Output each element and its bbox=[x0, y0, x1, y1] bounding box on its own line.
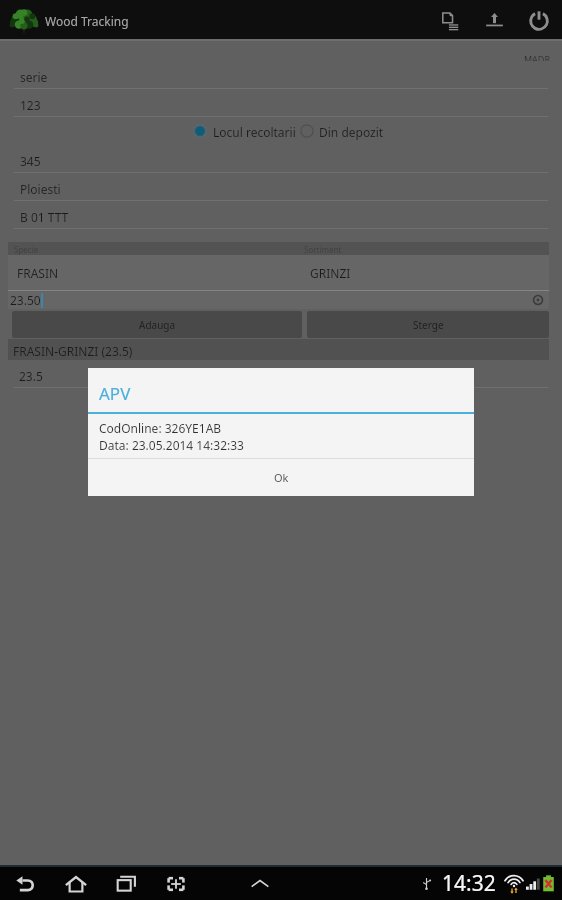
button[interactable]: Ok bbox=[88, 459, 474, 496]
staticText: Sortiment bbox=[304, 244, 342, 255]
button[interactable]: Sterge bbox=[307, 311, 549, 338]
staticText: serie bbox=[20, 69, 48, 85]
button[interactable]: Locul recoltarii bbox=[193, 122, 296, 140]
button[interactable]: Back bbox=[12, 867, 40, 900]
staticText: Din depozit bbox=[319, 124, 384, 140]
staticText: Adauga bbox=[139, 318, 176, 332]
button[interactable]: Adauga bbox=[12, 311, 302, 338]
staticText: APV bbox=[99, 382, 131, 405]
staticText: Locul recoltarii bbox=[213, 124, 296, 140]
staticText: Ploiesti bbox=[20, 181, 61, 197]
button[interactable]: Screenshot bbox=[162, 867, 190, 900]
staticText: 123 bbox=[20, 97, 41, 113]
staticText: Wood Tracking bbox=[45, 13, 129, 29]
staticText: 345 bbox=[20, 153, 41, 169]
button[interactable]: Upload bbox=[472, 1, 516, 40]
button[interactable]: Expand notifications bbox=[246, 867, 274, 900]
button[interactable]: Home bbox=[62, 867, 90, 900]
staticText: Sterge bbox=[413, 318, 444, 332]
staticText: Data: 23.05.2014 14:32:33 bbox=[99, 437, 244, 453]
staticText: 23.50 bbox=[10, 292, 41, 308]
staticText: FRASIN bbox=[17, 265, 310, 281]
button[interactable]: Recents bbox=[112, 867, 140, 900]
staticText: CodOnline: 326YE1AB bbox=[99, 420, 222, 436]
staticText: B 01 TTT bbox=[20, 209, 69, 225]
button[interactable]: Power bbox=[516, 1, 561, 40]
staticText: 23.5 bbox=[19, 368, 43, 384]
staticText: 14:32 bbox=[442, 869, 496, 898]
staticText: Ok bbox=[274, 470, 289, 485]
staticText: GRINZI bbox=[310, 265, 351, 281]
staticText: FRASIN-GRINZI (23.5) bbox=[13, 343, 133, 359]
button[interactable]: Documents bbox=[428, 1, 472, 40]
button[interactable]: Din depozit bbox=[300, 122, 384, 140]
staticText: MADR bbox=[0, 53, 550, 61]
